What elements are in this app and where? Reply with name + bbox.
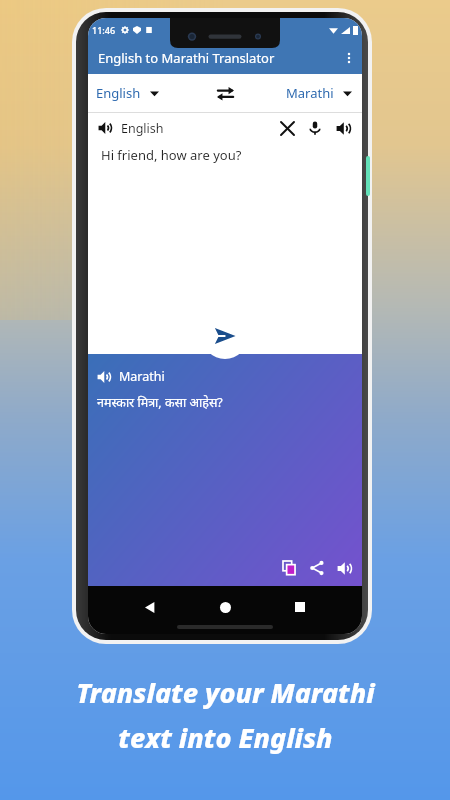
staticText: Hi friend, how are you? <box>101 146 242 164</box>
button[interactable]: Translate <box>202 313 248 359</box>
staticText: English <box>121 120 164 137</box>
button[interactable]: Speak <box>330 115 356 141</box>
button[interactable]: Marathi <box>242 74 352 112</box>
staticText: text into English <box>118 719 333 756</box>
button[interactable]: Copy <box>278 556 302 580</box>
staticText: Translate your Marathi <box>76 674 375 711</box>
button[interactable]: Home <box>212 594 238 620</box>
button[interactable]: Back <box>137 594 163 620</box>
staticText: English to Marathi Translator <box>98 49 275 67</box>
button[interactable]: Voice input <box>302 115 328 141</box>
button[interactable]: More options <box>336 42 362 74</box>
button[interactable]: Clear <box>274 115 300 141</box>
button[interactable]: English <box>96 74 208 112</box>
button[interactable]: Recents <box>287 594 313 620</box>
staticText: Marathi <box>286 84 334 102</box>
button[interactable]: Swap languages <box>208 76 242 110</box>
staticText: नमस्कार मित्रा, कसा आहेस? <box>97 394 223 411</box>
staticText: 11:46 <box>92 24 116 36</box>
button[interactable]: Listen translation <box>97 370 111 384</box>
button[interactable]: Share <box>305 556 329 580</box>
button[interactable]: Speak translation <box>332 556 356 580</box>
button[interactable]: Listen source <box>97 120 113 136</box>
staticText: English <box>96 84 141 102</box>
staticText: Marathi <box>119 368 165 385</box>
